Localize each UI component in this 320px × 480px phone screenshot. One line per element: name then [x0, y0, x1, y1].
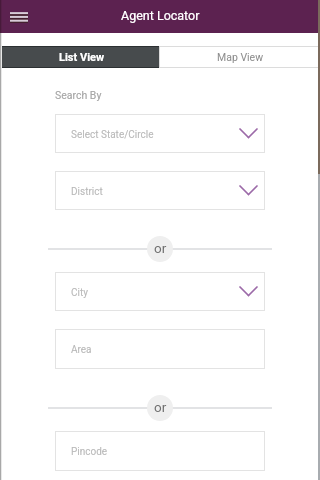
button[interactable]: Menu [6, 4, 32, 30]
staticText: City [71, 287, 88, 299]
staticText: Select State/Circle [71, 129, 154, 141]
button[interactable]: List View [1, 46, 159, 68]
staticText: Pincode [71, 446, 108, 458]
button[interactable]: Map View [159, 46, 320, 68]
button[interactable]: Select State/Circle [55, 114, 265, 153]
staticText: Search By [55, 89, 102, 101]
staticText: List View [59, 51, 105, 64]
staticText: or [154, 399, 167, 415]
button[interactable]: Area [55, 329, 265, 369]
staticText: Area [71, 344, 92, 356]
button[interactable]: District [55, 171, 265, 210]
staticText: District [71, 186, 103, 198]
staticText: Map View [217, 51, 264, 63]
button[interactable]: Pincode [55, 431, 265, 471]
staticText: or [154, 240, 167, 256]
button[interactable]: City [55, 272, 265, 311]
staticText: Agent Locator [121, 8, 200, 23]
